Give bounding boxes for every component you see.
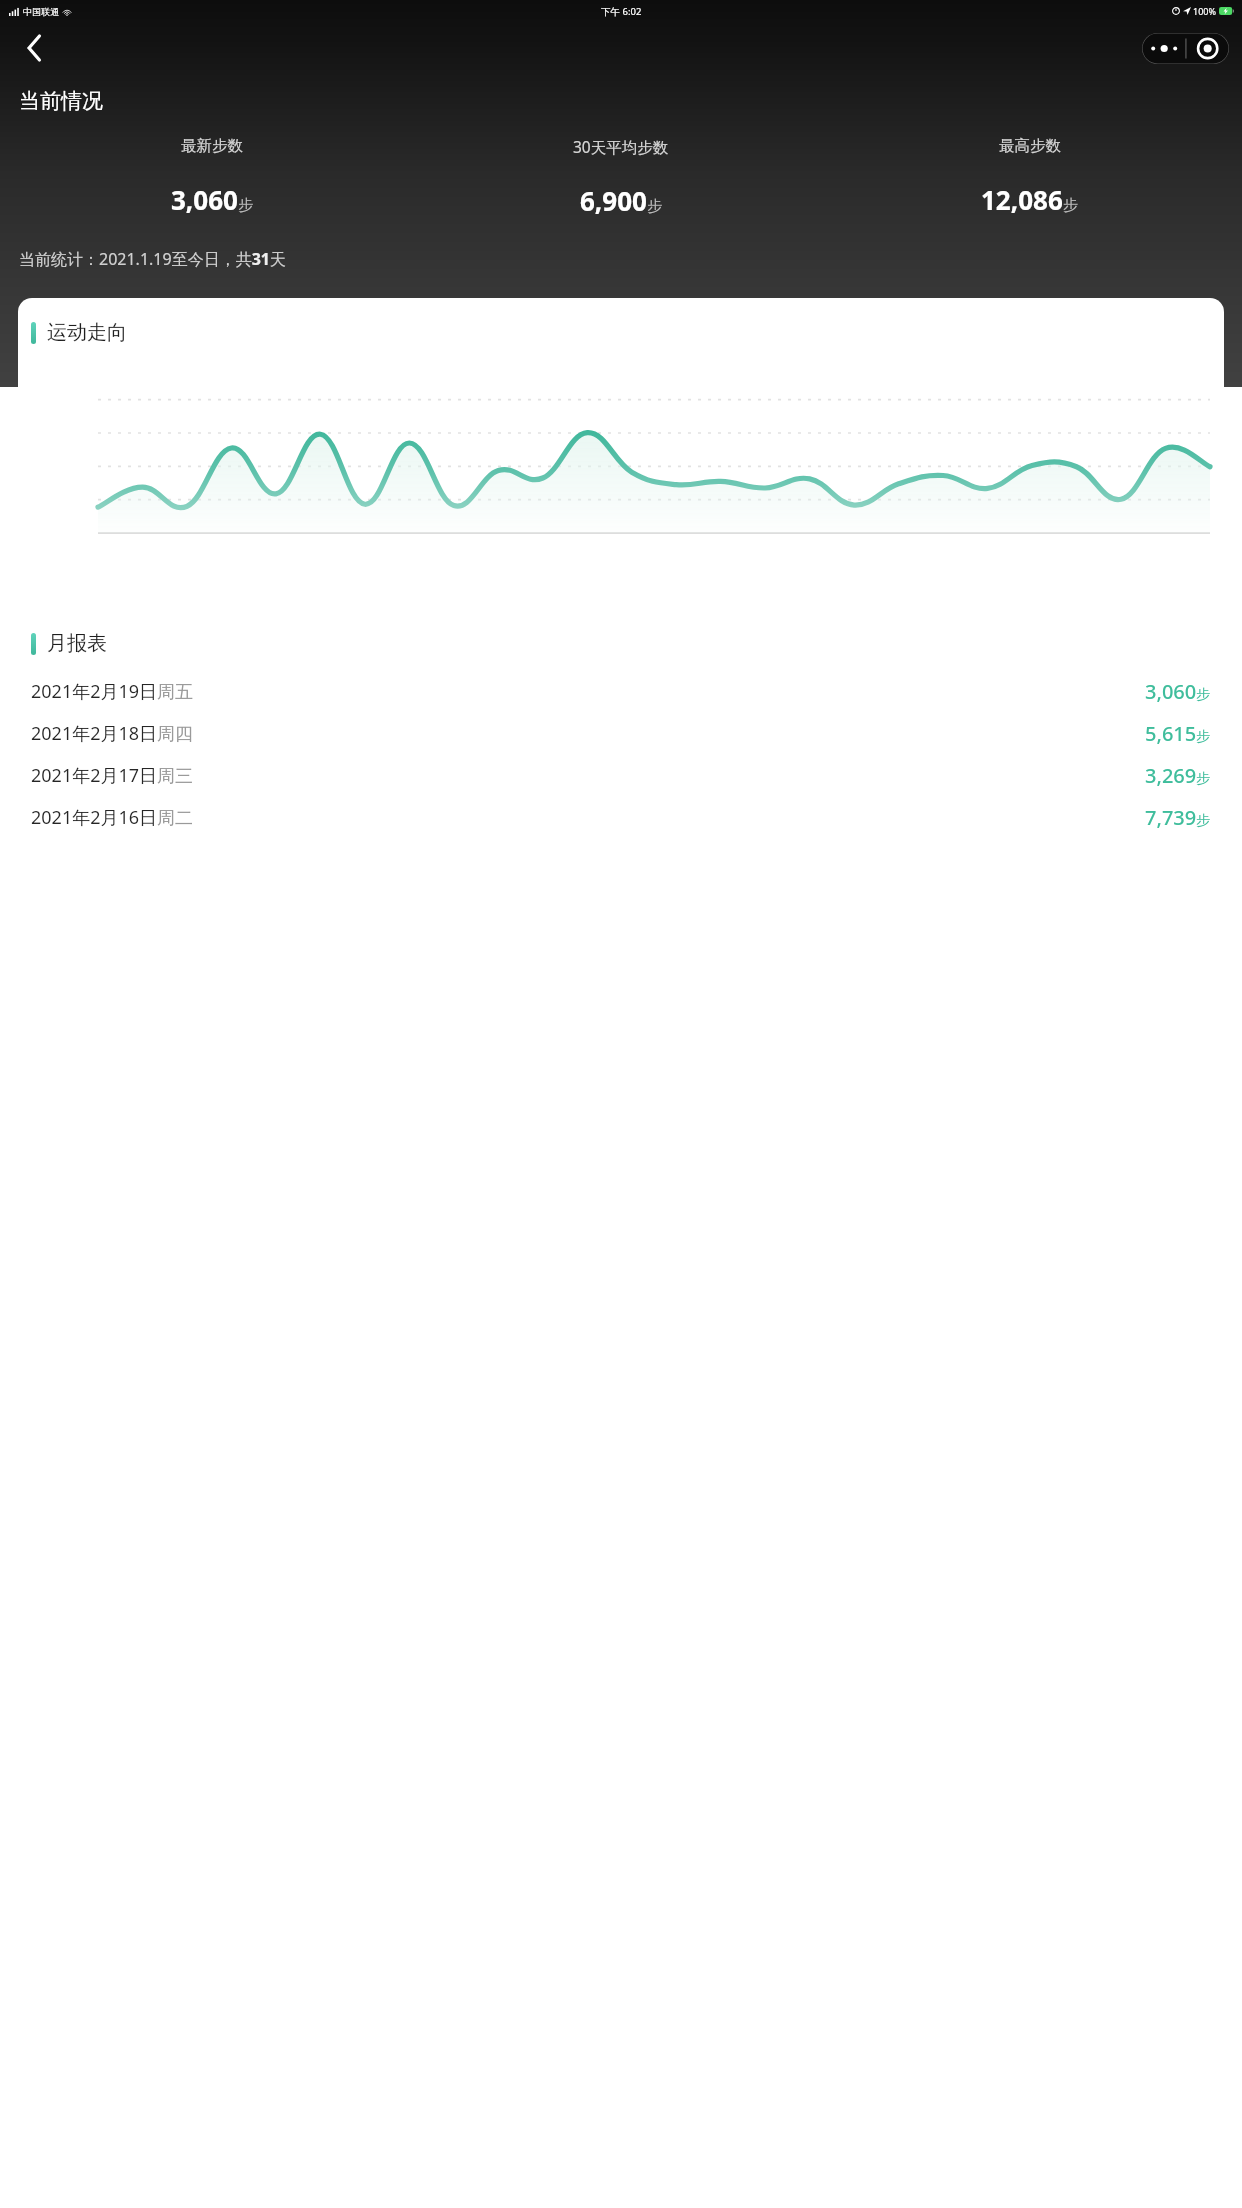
button[interactable]: 运动走向 [18,298,1224,597]
button[interactable]: 菜单 [1142,33,1229,64]
staticText: 3,060步 [171,182,253,217]
staticText: 运动走向 [47,320,127,345]
staticText: 2021年2月17日周三 [31,763,194,788]
staticText: 30天平均步数 [573,136,669,157]
staticText: 100% [1193,5,1216,17]
staticText: 当前统计：2021.1.19至今日，共31天 [19,248,286,270]
staticText: 2021年2月18日周四 [31,721,194,746]
staticText: 中国联通 [23,6,59,17]
button[interactable]: 2021年2月18日周四 [18,712,1224,754]
button[interactable]: 返回 [12,26,56,70]
staticText: 最新步数 [181,136,243,156]
button[interactable]: 最新步数 [8,136,416,217]
staticText: 2021年2月16日周二 [31,805,194,830]
button[interactable]: 2021年2月17日周三 [18,754,1224,796]
staticText: 5,615步 [1145,720,1211,747]
staticText: 最高步数 [999,136,1061,156]
button[interactable]: 30天平均步数 [416,136,825,218]
staticText: 当前情况 [19,88,103,114]
staticText: 7,739步 [1145,804,1211,831]
button[interactable]: 最高步数 [825,136,1234,217]
staticText: 月报表 [47,631,107,656]
staticText: 2021年2月19日周五 [31,679,194,704]
button[interactable]: 2021年2月16日周二 [18,796,1224,838]
staticText: 下午 6:02 [601,5,642,18]
staticText: 3,060步 [1145,678,1211,705]
staticText: 12,086步 [981,182,1078,217]
staticText: 6,900步 [580,183,662,218]
button[interactable]: 2021年2月19日周五 [18,670,1224,712]
staticText: 3,269步 [1145,762,1211,789]
